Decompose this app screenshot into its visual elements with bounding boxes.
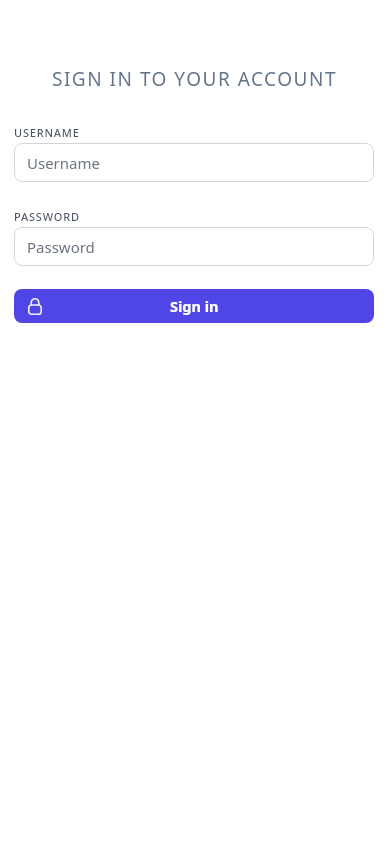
staticText: USERNAME [14,125,80,140]
staticText: PASSWORD [14,209,80,224]
staticText: SIGN IN TO YOUR ACCOUNT [52,66,337,92]
staticText: Password [27,237,95,257]
staticText: Sign in [170,296,219,316]
button[interactable]: Sign in [14,289,374,323]
button[interactable]: Username [14,143,374,182]
staticText: Username [27,153,100,173]
button[interactable]: Password [14,227,374,266]
